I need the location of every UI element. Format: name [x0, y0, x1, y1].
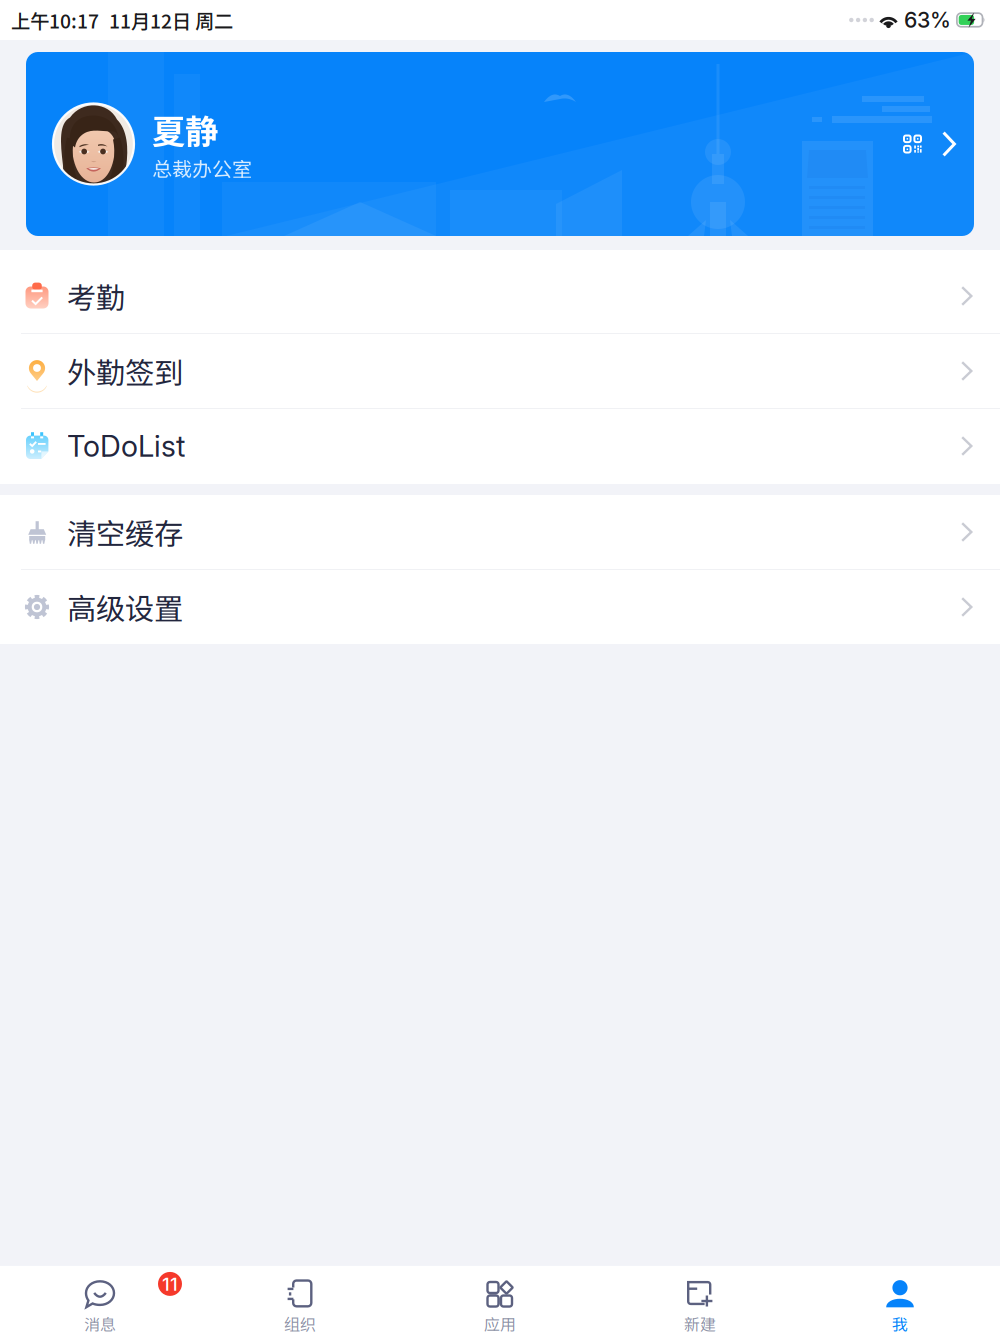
staticText: 应用: [484, 1312, 516, 1334]
button[interactable]: 考勤: [0, 259, 1000, 333]
button[interactable]: 高级设置: [0, 570, 1000, 644]
staticText: ToDoList: [67, 428, 185, 464]
staticText: 清空缓存: [67, 511, 183, 553]
button[interactable]: 外勤签到: [0, 334, 1000, 408]
button[interactable]: 夏静: [26, 52, 974, 236]
staticText: 总裁办公室: [152, 154, 252, 183]
staticText: 新建: [684, 1312, 716, 1334]
button[interactable]: 新建: [600, 1267, 800, 1334]
staticText: 高级设置: [67, 586, 183, 628]
staticText: 上午10:17: [11, 6, 99, 34]
button[interactable]: 应用: [400, 1267, 600, 1334]
button[interactable]: 我: [800, 1267, 1000, 1334]
staticText: 外勤签到: [67, 350, 183, 392]
staticText: 11: [162, 1273, 178, 1295]
button[interactable]: ToDoList: [0, 409, 1000, 483]
button[interactable]: 11: [0, 1267, 200, 1334]
staticText: 11月12日 周二: [109, 6, 233, 34]
staticText: 63%: [904, 7, 951, 33]
staticText: 消息: [84, 1312, 116, 1334]
button[interactable]: 组织: [200, 1267, 400, 1334]
staticText: 组织: [284, 1312, 316, 1334]
staticText: 夏静: [152, 105, 218, 154]
staticText: 考勤: [67, 275, 125, 317]
button[interactable]: 清空缓存: [0, 495, 1000, 569]
staticText: 我: [892, 1312, 908, 1334]
